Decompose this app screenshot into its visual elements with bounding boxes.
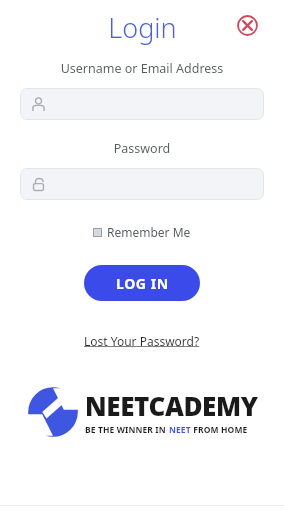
staticText: Username or Email Address xyxy=(0,60,284,77)
staticText: NEET xyxy=(169,424,191,436)
button[interactable]: Lost Your Password? xyxy=(80,331,204,351)
button[interactable]: Close xyxy=(234,12,260,38)
staticText: Password xyxy=(0,140,284,157)
staticText: BE THE WINNER IN xyxy=(85,424,169,436)
button[interactable]: Password xyxy=(20,168,264,200)
staticText: FROM HOME xyxy=(191,424,248,436)
staticText: Login xyxy=(108,9,177,46)
button[interactable]: Username or Email Address xyxy=(20,88,264,120)
staticText: NEETCADEMY xyxy=(85,388,258,423)
staticText: Remember Me xyxy=(107,224,191,240)
staticText: Lost Your Password? xyxy=(84,333,200,349)
button[interactable]: Remember Me xyxy=(91,221,193,243)
button[interactable]: LOG IN xyxy=(84,265,200,301)
staticText: LOG IN xyxy=(116,274,169,293)
